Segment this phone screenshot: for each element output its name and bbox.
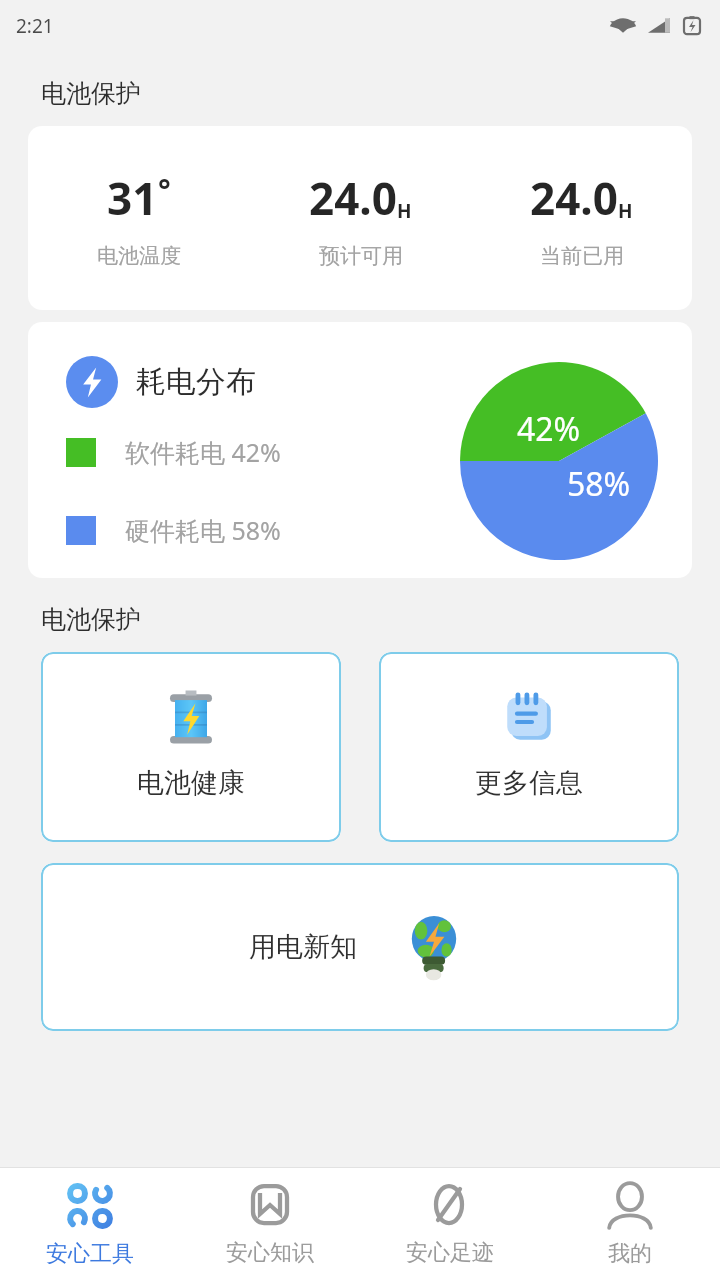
staticText: 安心工具	[46, 1240, 134, 1268]
button[interactable]: 安心足迹	[360, 1168, 540, 1280]
staticText: 电池保护	[41, 604, 141, 635]
staticText: 31	[107, 168, 158, 228]
staticText: 安心足迹	[406, 1239, 494, 1267]
button[interactable]: 耗电分布	[28, 322, 692, 578]
button[interactable]: 安心知识	[180, 1168, 360, 1280]
staticText: 我的	[608, 1240, 652, 1268]
staticText: H	[397, 198, 412, 224]
staticText: 电池温度	[97, 243, 181, 269]
staticText: 当前已用	[540, 243, 624, 269]
button[interactable]: 电池健康	[41, 652, 341, 842]
staticText: 软件耗电 42%	[125, 435, 281, 469]
button[interactable]: 31	[28, 126, 692, 310]
button[interactable]: 安心工具	[0, 1168, 180, 1280]
staticText: 42%	[517, 407, 581, 451]
staticText: 预计可用	[319, 243, 403, 269]
staticText: 24.0	[309, 168, 397, 228]
staticText: °	[158, 169, 171, 210]
staticText: 硬件耗电 58%	[125, 513, 281, 547]
staticText: 电池保护	[41, 78, 141, 109]
button[interactable]: 我的	[540, 1168, 720, 1280]
staticText: 用电新知	[249, 930, 357, 964]
staticText: 耗电分布	[136, 363, 256, 401]
staticText: 2:21	[16, 13, 54, 39]
button[interactable]: 用电新知	[41, 863, 679, 1031]
staticText: 58%	[567, 462, 631, 506]
staticText: 电池健康	[137, 766, 245, 800]
button[interactable]: 更多信息	[379, 652, 679, 842]
staticText: 更多信息	[475, 766, 583, 800]
staticText: 24.0	[530, 168, 618, 228]
staticText: H	[618, 198, 633, 224]
staticText: 安心知识	[226, 1239, 314, 1267]
